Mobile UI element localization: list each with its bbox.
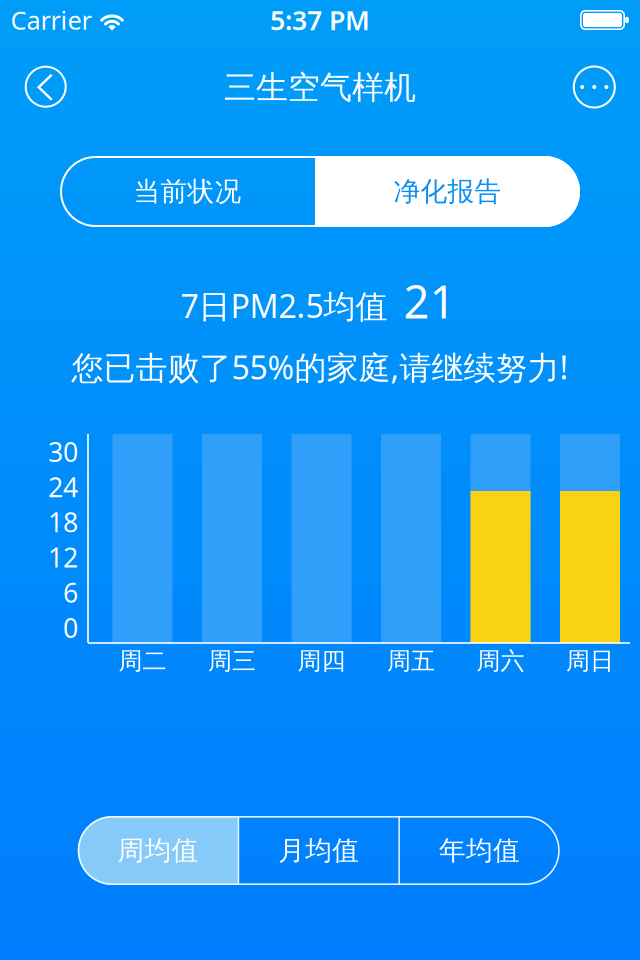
staticText: 5:37 PM	[270, 2, 370, 38]
staticText: 当前状况	[133, 175, 241, 208]
staticText: 12	[48, 539, 78, 575]
button[interactable]: 当前状况	[60, 156, 315, 227]
staticText: 21	[403, 271, 455, 331]
staticText: 周均值	[118, 834, 199, 867]
button[interactable]: 周均值	[78, 816, 238, 885]
button[interactable]: 月均值	[238, 816, 399, 885]
button[interactable]	[25, 66, 67, 108]
button[interactable]	[573, 65, 616, 108]
staticText: 6	[63, 575, 78, 610]
staticText: 周四	[297, 646, 345, 676]
staticText: 18	[48, 504, 78, 540]
staticText: 7日PM2.5均值	[180, 284, 387, 327]
staticText: 年均值	[439, 834, 520, 867]
staticText: 周五	[387, 646, 435, 676]
staticText: 您已击败了55%的家庭,请继续努力!	[71, 346, 568, 388]
staticText: Carrier	[10, 3, 91, 37]
staticText: 周三	[208, 646, 256, 676]
staticText: 24	[48, 469, 78, 504]
staticText: 周日	[566, 646, 614, 676]
staticText: 净化报告	[393, 175, 501, 208]
button[interactable]: 净化报告	[315, 156, 580, 227]
staticText: 周二	[118, 646, 166, 676]
staticText: 0	[63, 610, 78, 645]
staticText: 30	[48, 434, 78, 469]
staticText: 周六	[476, 646, 524, 676]
button[interactable]: 年均值	[399, 816, 560, 885]
staticText: 三生空气样机	[224, 68, 416, 107]
staticText: 月均值	[278, 834, 359, 867]
